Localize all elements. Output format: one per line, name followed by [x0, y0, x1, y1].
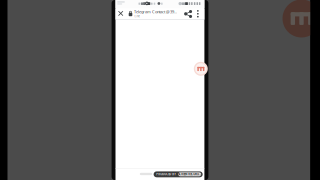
button[interactable]: More options — [197, 10, 199, 17]
button[interactable]: Share — [184, 10, 192, 18]
staticText: PRODUCED BY — [156, 172, 176, 176]
button[interactable]: Close — [118, 11, 123, 16]
staticText: Telegram Contact @39… — [134, 9, 177, 14]
staticText: t.me — [134, 14, 140, 18]
staticText: SCREEN RECORDER — [178, 172, 201, 176]
